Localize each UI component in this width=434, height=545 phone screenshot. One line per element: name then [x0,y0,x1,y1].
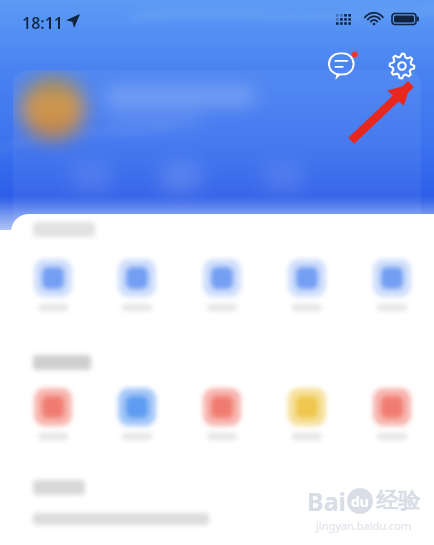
button[interactable] [118,388,156,440]
staticText: jingyan.baidu.com [316,518,412,533]
staticText: 18:11 [22,12,64,34]
button[interactable]: Messages [324,46,364,86]
button[interactable] [34,259,72,311]
button[interactable] [373,388,411,440]
button[interactable] [118,259,156,311]
staticText: du [351,492,369,511]
button[interactable] [203,388,241,440]
button[interactable] [373,259,411,311]
button[interactable]: Settings [382,46,422,86]
button[interactable] [288,388,326,440]
staticText: 经验 [376,487,420,515]
staticText: Bai [307,484,347,518]
button[interactable] [203,259,241,311]
button[interactable] [288,259,326,311]
button[interactable] [34,388,72,440]
